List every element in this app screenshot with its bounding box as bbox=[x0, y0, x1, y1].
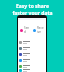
button[interactable] bbox=[18, 57, 46, 63]
staticText: Easy to share bbox=[16, 3, 49, 10]
button[interactable] bbox=[18, 39, 46, 45]
button[interactable] bbox=[18, 51, 46, 57]
button[interactable] bbox=[18, 69, 46, 72]
button[interactable] bbox=[18, 45, 46, 51]
button[interactable] bbox=[18, 63, 46, 69]
button[interactable]: Receive bbox=[32, 25, 45, 35]
staticText: Receive bbox=[37, 26, 44, 34]
button[interactable]: Send bbox=[19, 25, 32, 35]
staticText: faster your data bbox=[12, 10, 53, 17]
staticText: Send bbox=[24, 26, 31, 34]
